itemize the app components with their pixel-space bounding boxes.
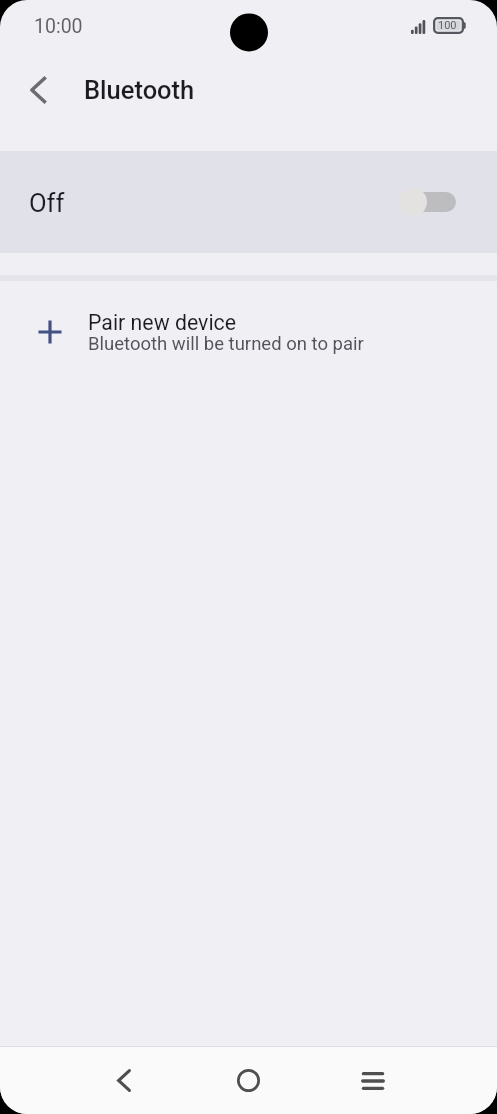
staticText: Bluetooth xyxy=(84,75,195,105)
staticText: Pair new device xyxy=(88,310,237,335)
button[interactable]: Back xyxy=(14,66,62,114)
button[interactable]: Back xyxy=(99,1056,148,1105)
staticText: Bluetooth will be turned on to pair xyxy=(88,333,364,355)
staticText: 100 xyxy=(438,19,457,32)
button[interactable]: Bluetooth off xyxy=(0,151,497,253)
button[interactable]: Home xyxy=(224,1056,273,1105)
button[interactable]: Pair new device xyxy=(0,281,497,369)
button[interactable]: Recent apps xyxy=(348,1056,397,1105)
staticText: Off xyxy=(29,188,65,218)
staticText: 10:00 xyxy=(34,15,83,38)
